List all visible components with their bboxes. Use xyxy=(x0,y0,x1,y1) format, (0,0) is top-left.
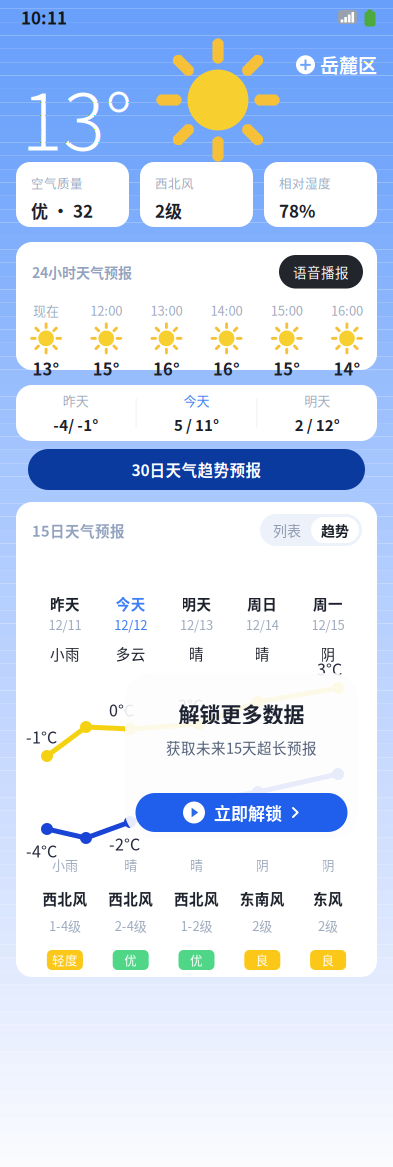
staticText: 昨天 xyxy=(50,593,80,614)
staticText: -1°C xyxy=(237,802,268,825)
staticText: 西北风 xyxy=(155,174,194,192)
staticText: 小雨 xyxy=(50,643,80,664)
staticText: 获取未来15天超长预报 xyxy=(166,737,317,758)
staticText: 东南风 xyxy=(240,888,285,909)
staticText: 小雨 xyxy=(52,855,78,874)
staticText: 13° xyxy=(33,356,60,380)
button[interactable]: 列表 xyxy=(263,517,311,543)
staticText: 2-4级 xyxy=(115,916,147,935)
staticText: 2 / 12° xyxy=(295,414,340,435)
staticText: 12/13 xyxy=(180,615,213,634)
staticText: 晴 xyxy=(190,855,203,874)
staticText: 周日 xyxy=(247,593,277,614)
button[interactable]: 岳麓区 xyxy=(293,47,380,82)
staticText: 今天 xyxy=(183,391,209,409)
staticText: 良 xyxy=(322,951,335,969)
staticText: 10:11 xyxy=(21,5,67,29)
staticText: 解锁更多数据 xyxy=(178,698,304,728)
staticText: 趋势 xyxy=(321,520,349,540)
staticText: -1°C xyxy=(26,725,57,748)
staticText: 立即解锁 xyxy=(214,800,282,825)
staticText: 现在 xyxy=(33,300,59,319)
staticText: 13:00 xyxy=(150,300,182,319)
staticText: 12/11 xyxy=(48,615,81,634)
staticText: 1-4级 xyxy=(49,916,81,935)
staticText: 24小时天气预报 xyxy=(32,262,132,282)
staticText: 语音播报 xyxy=(293,262,349,281)
staticText: 岳麓区 xyxy=(320,51,377,78)
staticText: 空气质量 xyxy=(31,174,83,192)
staticText: 优 xyxy=(190,951,203,969)
staticText: 78% xyxy=(279,198,315,223)
staticText: 轻度 xyxy=(52,951,78,969)
staticText: 15° xyxy=(93,356,120,380)
staticText: 晴 xyxy=(124,855,137,874)
staticText: 5 / 11° xyxy=(174,414,219,435)
staticText: 西北风 xyxy=(108,888,153,909)
staticText: 13° xyxy=(21,60,132,173)
staticText: 2级 xyxy=(155,198,182,223)
staticText: 明天 xyxy=(181,593,211,614)
staticText: 2级 xyxy=(318,916,338,935)
staticText: 0°C xyxy=(109,698,134,721)
staticText: 15:00 xyxy=(271,300,303,319)
button[interactable]: 趋势 xyxy=(311,517,359,543)
staticText: 西北风 xyxy=(174,888,219,909)
staticText: 西北风 xyxy=(42,888,87,909)
staticText: 12/15 xyxy=(312,615,345,634)
staticText: 1-2级 xyxy=(180,916,212,935)
staticText: 阴 xyxy=(321,643,336,664)
staticText: 列表 xyxy=(273,520,301,540)
button[interactable]: 立即解锁 xyxy=(135,793,347,832)
staticText: 16° xyxy=(213,356,240,380)
button[interactable]: 30日天气趋势预报 xyxy=(28,449,365,490)
staticText: 30日天气趋势预报 xyxy=(131,458,261,481)
staticText: 3°C xyxy=(317,657,342,680)
button[interactable]: 语音播报 xyxy=(279,255,363,288)
staticText: -2°C xyxy=(109,832,140,855)
staticText: 12/12 xyxy=(114,615,147,634)
staticText: 多云 xyxy=(116,643,146,664)
staticText: 12/14 xyxy=(246,615,279,634)
staticText: 今天 xyxy=(116,593,146,614)
staticText: -4°C xyxy=(26,839,57,862)
staticText: 15° xyxy=(273,356,300,380)
staticText: 12:00 xyxy=(90,300,122,319)
staticText: 2°C xyxy=(178,693,203,716)
staticText: 昨天 xyxy=(63,391,89,409)
staticText: 周一 xyxy=(313,593,343,614)
staticText: 优 · 32 xyxy=(31,198,93,223)
staticText: 16:00 xyxy=(331,300,363,319)
staticText: 相对湿度 xyxy=(279,174,331,192)
staticText: 14:00 xyxy=(211,300,243,319)
staticText: 15日天气预报 xyxy=(32,520,125,541)
staticText: 东风 xyxy=(313,888,343,909)
staticText: 晴 xyxy=(255,643,270,664)
staticText: 晴 xyxy=(189,643,204,664)
staticText: 阴 xyxy=(256,855,269,874)
staticText: 优 xyxy=(124,951,137,969)
staticText: 14° xyxy=(333,356,360,380)
staticText: -4/ -1° xyxy=(53,414,98,435)
staticText: 16° xyxy=(153,356,180,380)
staticText: 2级 xyxy=(252,916,272,935)
staticText: -1°C xyxy=(178,812,209,835)
staticText: 良 xyxy=(256,951,269,969)
staticText: 阴 xyxy=(322,855,335,874)
staticText: 明天 xyxy=(304,391,330,409)
